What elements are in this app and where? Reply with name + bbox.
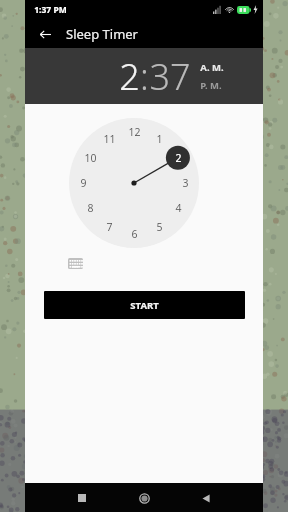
staticText: 1 xyxy=(156,132,163,146)
staticText: 5 xyxy=(156,220,163,234)
staticText: 7 xyxy=(106,220,113,234)
staticText: 6 xyxy=(131,227,138,241)
button[interactable]: A. M. xyxy=(200,61,224,74)
staticText: 37 xyxy=(149,52,191,101)
button[interactable]: START xyxy=(44,291,245,319)
button[interactable]: 37 xyxy=(149,52,191,101)
staticText: 9 xyxy=(80,176,87,190)
staticText: 3 xyxy=(182,176,189,190)
button[interactable]: Home xyxy=(133,487,155,509)
staticText: A. M. xyxy=(200,61,224,74)
staticText: 1:37 PM xyxy=(34,4,67,16)
staticText: 10 xyxy=(84,151,97,165)
staticText: P. M. xyxy=(200,79,222,92)
staticText: Sleep Timer xyxy=(66,25,138,43)
button[interactable]: P. M. xyxy=(200,79,222,92)
staticText: 12 xyxy=(128,125,141,139)
button[interactable]: 2 xyxy=(119,52,140,101)
button[interactable]: Recent apps xyxy=(71,487,93,509)
staticText: START xyxy=(130,299,159,312)
button[interactable]: Navigate up xyxy=(33,22,57,46)
staticText: : xyxy=(140,52,149,101)
staticText: 4 xyxy=(175,201,182,215)
staticText: 8 xyxy=(87,201,94,215)
staticText: 2 xyxy=(119,52,140,101)
staticText: 11 xyxy=(103,132,116,146)
staticText: 2 xyxy=(175,151,182,165)
button[interactable]: Switch to keyboard input xyxy=(67,257,83,270)
button[interactable]: Clock face hour picker xyxy=(69,118,199,248)
button[interactable]: Back xyxy=(195,487,217,509)
